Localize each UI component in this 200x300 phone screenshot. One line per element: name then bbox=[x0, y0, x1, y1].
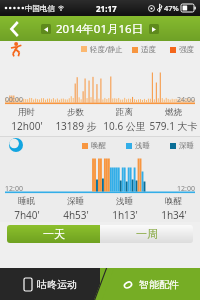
staticText: 12:00 bbox=[5, 184, 23, 194]
staticText: 步数 bbox=[67, 107, 84, 118]
staticText: 一天 bbox=[43, 227, 65, 241]
staticText: 7h40' bbox=[14, 208, 40, 222]
staticText: 579.1 大卡 bbox=[149, 119, 198, 133]
staticText: 1h13' bbox=[112, 208, 138, 222]
staticText: 10.6 公里 bbox=[103, 119, 146, 133]
staticText: 47% bbox=[164, 3, 179, 13]
staticText: 距离 bbox=[116, 107, 133, 118]
button[interactable]: 智能配件 bbox=[100, 268, 200, 300]
staticText: 强度 bbox=[179, 45, 194, 54]
staticText: 深睡 bbox=[179, 141, 194, 150]
staticText: 4h53' bbox=[63, 208, 89, 222]
staticText: 1h34' bbox=[161, 208, 187, 222]
staticText: 一周 bbox=[136, 227, 158, 241]
staticText: 咕咚运动 bbox=[37, 278, 77, 291]
staticText: 00:00 bbox=[5, 95, 23, 105]
button[interactable]: 咕咚运动 bbox=[0, 268, 100, 300]
staticText: 21:17 bbox=[96, 3, 117, 14]
staticText: 13189 步 bbox=[55, 119, 97, 133]
staticText: 轻度/静止 bbox=[90, 44, 123, 54]
button[interactable]: 一周 bbox=[100, 225, 193, 243]
staticText: 唤醒 bbox=[165, 196, 182, 207]
staticText: 适度 bbox=[141, 45, 156, 54]
button[interactable]: Back bbox=[0, 16, 30, 41]
staticText: 深睡 bbox=[67, 196, 84, 207]
staticText: 12:00 bbox=[177, 184, 195, 194]
staticText: 12h00' bbox=[11, 119, 43, 133]
staticText: 燃烧 bbox=[165, 107, 182, 118]
staticText: 24:00 bbox=[177, 95, 195, 105]
button[interactable]: Previous day bbox=[41, 24, 51, 34]
staticText: 浅睡 bbox=[116, 196, 133, 207]
staticText: 唤醒 bbox=[91, 141, 106, 150]
staticText: 智能配件 bbox=[139, 278, 179, 291]
button[interactable]: Next day bbox=[149, 24, 159, 34]
staticText: 用时 bbox=[18, 107, 35, 118]
staticText: 睡眠 bbox=[18, 196, 35, 207]
button[interactable]: 一天 bbox=[7, 225, 100, 243]
staticText: 中国电信 bbox=[25, 4, 55, 13]
staticText: 浅睡 bbox=[135, 141, 150, 150]
staticText: 2014年01月16日 bbox=[56, 21, 144, 37]
